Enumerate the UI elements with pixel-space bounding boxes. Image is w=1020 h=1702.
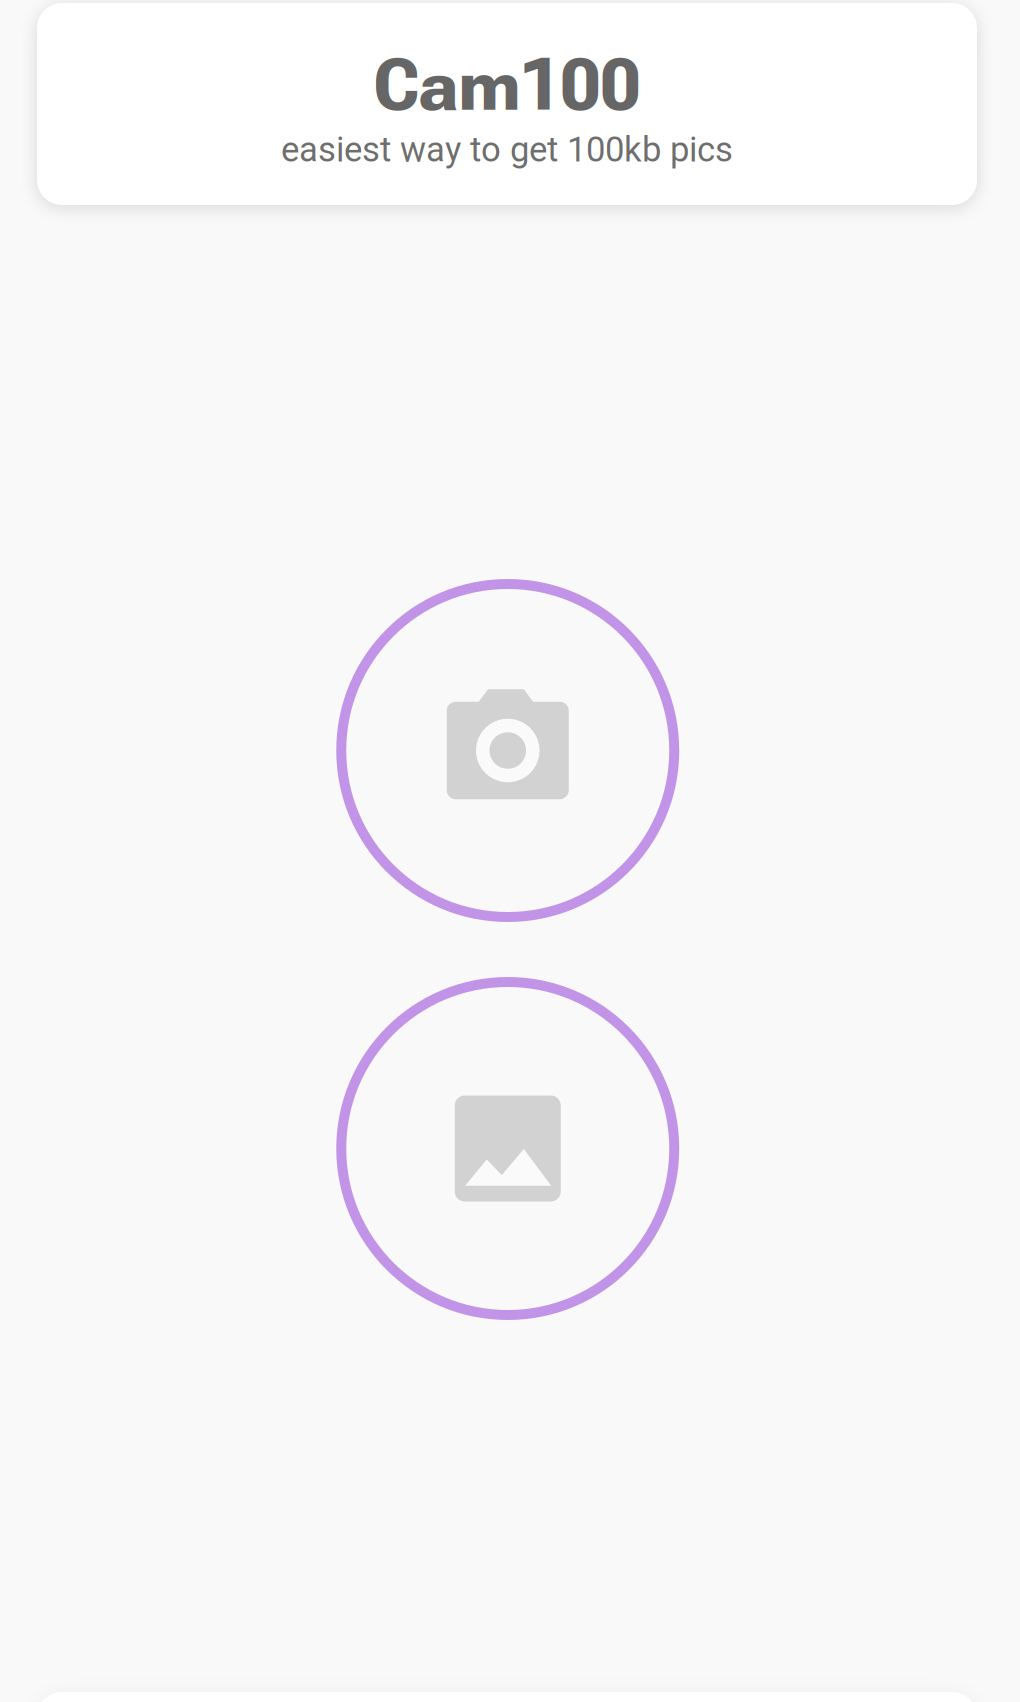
staticText: easiest way to get 100kb pics — [281, 129, 733, 170]
button[interactable]: Choose a photo from the library — [336, 977, 679, 1320]
staticText: Cam100 — [373, 43, 640, 127]
button[interactable]: Take a photo — [336, 579, 679, 922]
